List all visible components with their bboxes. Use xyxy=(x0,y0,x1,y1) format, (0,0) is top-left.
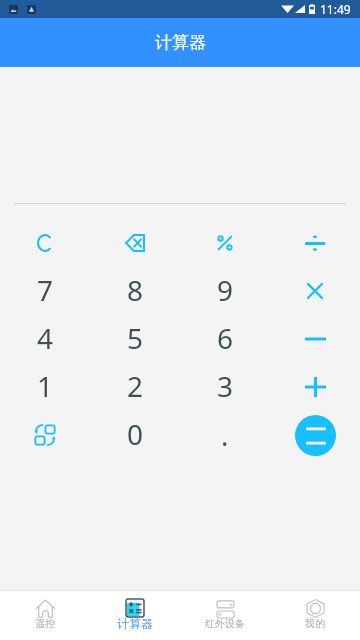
button[interactable]: 遥控 xyxy=(0,590,90,640)
button[interactable]: 9 xyxy=(180,267,270,315)
staticText: 4 xyxy=(37,319,54,357)
staticText: 7 xyxy=(37,271,54,309)
button[interactable]: 红外设备 xyxy=(180,590,270,640)
button[interactable]: 0 xyxy=(90,411,180,459)
button[interactable]: 3 xyxy=(180,363,270,411)
button[interactable]: Multiply xyxy=(270,267,360,315)
button[interactable]: Percent xyxy=(180,219,270,267)
other: Divide xyxy=(305,234,325,252)
button[interactable]: Plus xyxy=(270,363,360,411)
button[interactable]: 4 xyxy=(0,315,90,363)
button[interactable]: 计算器 xyxy=(90,590,180,640)
button[interactable]: Equals xyxy=(295,415,336,456)
button[interactable]: Divide xyxy=(270,219,360,267)
staticText: 2 xyxy=(127,367,144,405)
staticText: 计算器 xyxy=(117,616,153,631)
button[interactable]: Minus xyxy=(270,315,360,363)
button[interactable]: 6 xyxy=(180,315,270,363)
button[interactable]: . xyxy=(180,411,270,459)
other: Percent xyxy=(217,235,233,251)
other: Clear xyxy=(37,234,53,252)
button[interactable]: Equals xyxy=(270,411,360,459)
staticText: 计算器 xyxy=(155,32,206,53)
other: Minus xyxy=(305,329,326,349)
staticText: 1 xyxy=(37,367,54,405)
button[interactable]: 我的 xyxy=(270,590,360,640)
button[interactable]: 7 xyxy=(0,267,90,315)
other: Backspace xyxy=(125,234,145,252)
button[interactable]: Convert xyxy=(0,411,90,459)
other: Plus xyxy=(305,377,326,397)
staticText: 6 xyxy=(217,319,234,357)
button[interactable]: 8 xyxy=(90,267,180,315)
staticText: 红外设备 xyxy=(205,617,245,630)
staticText: 11:49 xyxy=(320,1,351,17)
staticText: 5 xyxy=(127,319,144,357)
button[interactable]: Backspace xyxy=(90,219,180,267)
button[interactable]: 2 xyxy=(90,363,180,411)
button[interactable]: 1 xyxy=(0,363,90,411)
other: Multiply xyxy=(307,283,323,299)
staticText: 8 xyxy=(127,271,144,309)
staticText: 9 xyxy=(217,271,234,309)
staticText: . xyxy=(221,416,229,454)
staticText: 3 xyxy=(217,367,234,405)
button[interactable]: 5 xyxy=(90,315,180,363)
button[interactable]: Clear xyxy=(0,219,90,267)
staticText: 0 xyxy=(127,415,144,453)
staticText: 遥控 xyxy=(35,617,55,630)
staticText: 我的 xyxy=(305,617,325,630)
other: Convert xyxy=(34,424,56,446)
